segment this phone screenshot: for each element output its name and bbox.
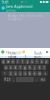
button[interactable]: d <box>13 65 17 70</box>
button[interactable]: i <box>35 59 39 64</box>
button[interactable]: z <box>8 71 13 76</box>
button[interactable]: y <box>25 59 29 64</box>
staticText: Jane Appleseed <box>6 3 32 9</box>
button[interactable]: r <box>16 59 20 64</box>
button[interactable]: s <box>8 65 13 70</box>
staticText: . <box>36 78 37 81</box>
staticText: z <box>10 72 11 75</box>
staticText: x <box>45 72 46 75</box>
staticText: v <box>24 72 25 75</box>
button[interactable]: u <box>30 59 34 64</box>
staticText: s <box>10 66 11 69</box>
staticText: q <box>2 60 4 63</box>
staticText: d <box>14 66 16 69</box>
button[interactable]: . <box>35 77 39 82</box>
button[interactable]: Contact avatar <box>1 6 5 10</box>
button[interactable]: Attach <box>1 50 4 54</box>
staticText: ret <box>41 78 45 81</box>
staticText: g <box>24 66 26 69</box>
staticText: Message <box>5 49 21 55</box>
button[interactable]: m <box>37 71 41 76</box>
button[interactable]: g <box>23 65 27 70</box>
staticText: online <box>6 9 16 12</box>
staticText: m <box>38 72 40 75</box>
button[interactable]: b <box>28 71 32 76</box>
staticText: Touch Sounds <box>34 52 42 62</box>
staticText: u <box>31 60 33 63</box>
staticText: p <box>46 60 48 63</box>
button[interactable]: p <box>44 59 49 64</box>
staticText: ?123 <box>4 78 11 81</box>
button[interactable]: l <box>42 65 46 70</box>
staticText: n <box>34 72 36 75</box>
staticText: t <box>22 60 23 63</box>
staticText: l <box>44 66 45 69</box>
button[interactable]: t <box>20 59 25 64</box>
staticText: Messages are end-to-end encrypted. <box>7 14 42 21</box>
staticText: o <box>41 60 43 63</box>
staticText: ^ <box>4 72 6 75</box>
staticText: f <box>20 66 21 69</box>
button[interactable]: j <box>32 65 37 70</box>
staticText: 9:41 <box>1 0 8 5</box>
staticText: e <box>12 60 14 63</box>
button[interactable]: ?123 <box>4 77 11 82</box>
button[interactable]: n <box>32 71 37 76</box>
staticText: , <box>13 78 14 81</box>
staticText: i <box>36 60 37 63</box>
button[interactable]: Send <box>46 50 49 53</box>
button[interactable]: a <box>4 65 8 70</box>
button[interactable]: w <box>6 59 10 64</box>
staticText: w <box>7 60 9 63</box>
staticText: a <box>5 66 6 69</box>
button[interactable]: h <box>28 65 32 70</box>
button[interactable]: k <box>37 65 41 70</box>
button[interactable]: v <box>23 71 27 76</box>
button[interactable]: x <box>13 71 17 76</box>
staticText: y <box>27 60 28 63</box>
button[interactable]: Emoji <box>22 51 25 53</box>
button[interactable]: , <box>11 77 15 82</box>
staticText: c <box>20 72 21 75</box>
staticText: r <box>17 60 18 63</box>
staticText: Personalisation <box>8 52 17 62</box>
button[interactable]: e <box>11 59 15 64</box>
staticText: b <box>29 72 31 75</box>
staticText: h <box>29 66 31 69</box>
staticText: x <box>15 72 16 75</box>
button[interactable]: c <box>18 71 22 76</box>
staticText: j <box>34 66 35 69</box>
staticText: I <box>25 55 26 59</box>
button[interactable]: o <box>40 59 44 64</box>
button[interactable]: f <box>18 65 22 70</box>
button[interactable]: x <box>42 71 48 76</box>
button[interactable]: q <box>1 59 5 64</box>
button[interactable]: ret <box>39 77 46 82</box>
staticText: k <box>39 66 40 69</box>
button[interactable]: ^ <box>2 71 8 76</box>
